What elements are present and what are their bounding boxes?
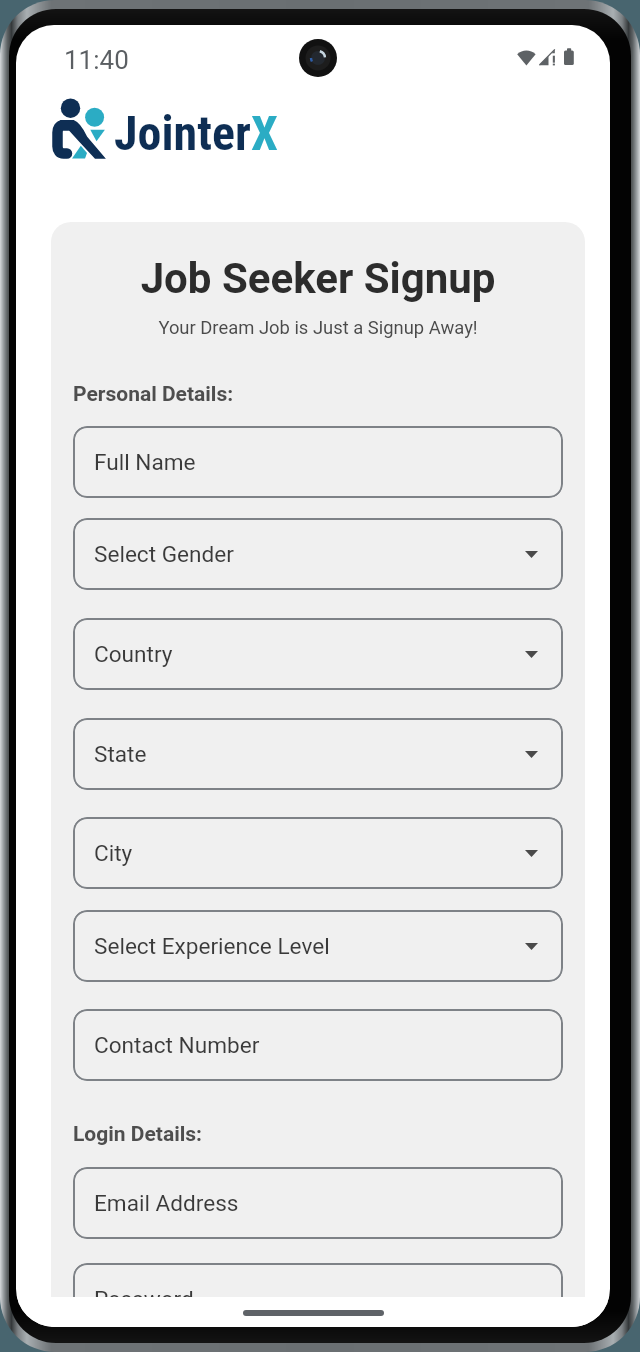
- staticText: X: [251, 105, 278, 161]
- button[interactable]: Full Name: [73, 426, 563, 498]
- staticText: City: [94, 840, 133, 866]
- button[interactable]: Email Address: [73, 1167, 563, 1239]
- staticText: Email Address: [94, 1190, 239, 1216]
- staticText: Full Name: [94, 449, 196, 475]
- staticText: Password: [94, 1286, 194, 1312]
- staticText: Select Gender: [94, 541, 234, 567]
- staticText: Select Experience Level: [94, 933, 330, 959]
- staticText: Country: [94, 641, 173, 667]
- button[interactable]: Password: [73, 1263, 563, 1327]
- button[interactable]: State: [73, 718, 563, 790]
- staticText: Personal Details:: [73, 382, 234, 407]
- button[interactable]: Select Gender: [73, 518, 563, 590]
- button[interactable]: Select Experience Level: [73, 910, 563, 982]
- staticText: Login Details:: [73, 1122, 203, 1147]
- button[interactable]: City: [73, 817, 563, 889]
- button[interactable]: Contact Number: [73, 1009, 563, 1081]
- staticText: Job Seeker Signup: [51, 254, 585, 303]
- staticText: Your Dream Job is Just a Signup Away!: [51, 317, 585, 339]
- staticText: 11:40: [64, 45, 129, 75]
- button[interactable]: Country: [73, 618, 563, 690]
- other: JointerX logo: [51, 98, 109, 161]
- staticText: Contact Number: [94, 1032, 260, 1058]
- staticText: State: [94, 741, 147, 767]
- staticText: Jointer: [114, 105, 251, 161]
